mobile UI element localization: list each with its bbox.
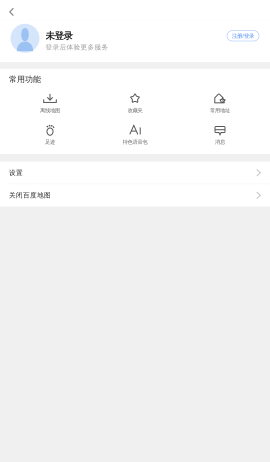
staticText: 关闭百度地图 [9, 191, 51, 199]
staticText: 消息 [215, 139, 225, 145]
button[interactable]: 注册/登录 [227, 31, 259, 46]
staticText: 足迹 [45, 139, 55, 145]
button[interactable]: 常用地址 [177, 90, 262, 117]
staticText: 未登录 [45, 30, 72, 42]
staticText: 常用地址 [210, 107, 230, 114]
staticText: 特色语音包 [122, 139, 147, 145]
button[interactable]: 关闭百度地图 [0, 184, 270, 206]
staticText: 注册/登录 [232, 32, 254, 39]
staticText: 设置 [9, 169, 23, 177]
staticText: 常用功能 [9, 74, 41, 84]
button[interactable]: 离线地图 [7, 90, 92, 117]
button[interactable]: 设置 [0, 162, 270, 184]
button[interactable]: Back [0, 0, 22, 20]
button[interactable]: 特色语音包 [92, 122, 177, 148]
staticText: 离线地图 [40, 107, 60, 114]
button[interactable]: 收藏夹 [92, 90, 177, 117]
button[interactable]: 足迹 [7, 122, 92, 148]
staticText: 收藏夹 [127, 107, 142, 114]
staticText: 登录后体验更多服务 [45, 43, 108, 51]
button[interactable]: 消息 [177, 122, 262, 148]
